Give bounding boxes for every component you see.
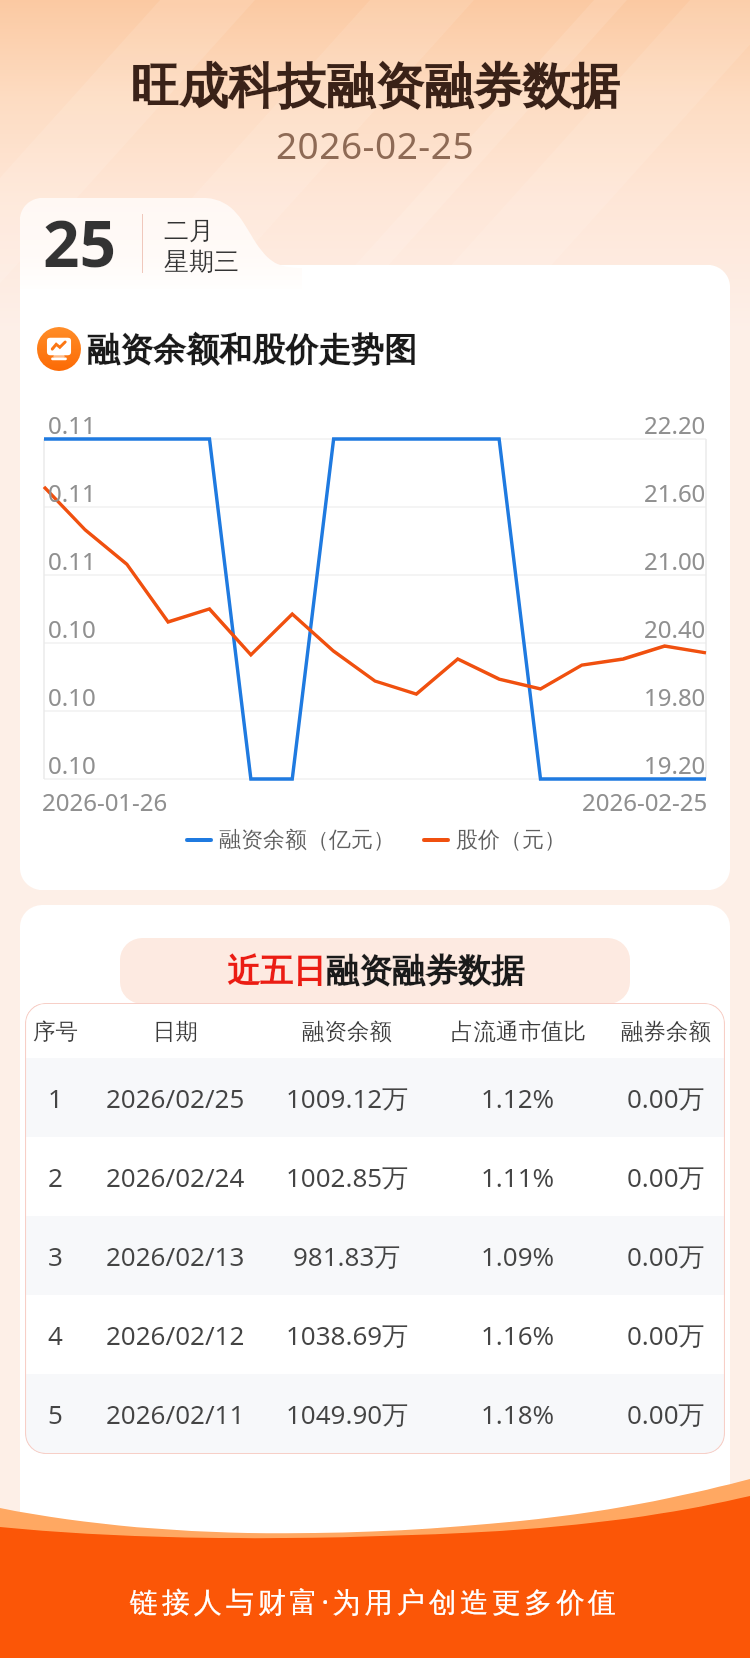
staticText: 融资余额 (302, 1017, 392, 1045)
staticText: 二月 (164, 215, 214, 246)
staticText: 旺成科技融资融券数据 (0, 56, 750, 118)
staticText: 1.18% (481, 1396, 555, 1431)
staticText: 0.10 (48, 612, 96, 645)
staticText: 2026-01-26 (42, 785, 168, 818)
button[interactable]: 序号 (25, 1003, 725, 1058)
staticText: 1038.69万 (286, 1317, 409, 1353)
staticText: 日期 (153, 1017, 198, 1045)
staticText: 19.20 (644, 748, 706, 781)
staticText: 3 (48, 1238, 63, 1273)
staticText: 0.00万 (627, 1317, 705, 1353)
staticText: 2026-02-25 (582, 785, 708, 818)
staticText: 0.11 (48, 544, 96, 577)
staticText: 1009.12万 (286, 1080, 409, 1116)
staticText: 星期三 (164, 246, 239, 277)
staticText: 融券余额 (621, 1017, 711, 1045)
staticText: 1.11% (481, 1159, 555, 1194)
staticText: 2 (48, 1159, 63, 1194)
staticText: 0.00万 (627, 1238, 705, 1274)
staticText: 融资融券数据 (326, 950, 524, 992)
staticText: 0.10 (48, 680, 96, 713)
staticText: 20.40 (644, 612, 706, 645)
button[interactable]: 4 (25, 1295, 725, 1374)
staticText: 21.60 (644, 476, 706, 509)
staticText: 链接人与财富·为用户创造更多价值 (0, 1582, 750, 1620)
button[interactable]: 2 (25, 1137, 725, 1216)
button[interactable]: 3 (25, 1216, 725, 1295)
staticText: 0.00万 (627, 1080, 705, 1116)
staticText: 2026/02/12 (106, 1317, 245, 1352)
staticText: 融资余额（亿元） (219, 826, 395, 854)
button[interactable]: 5 (25, 1374, 725, 1453)
staticText: 22.20 (644, 408, 706, 441)
staticText: 0.11 (48, 408, 96, 441)
staticText: 19.80 (644, 680, 706, 713)
staticText: 融资余额和股价走势图 (87, 329, 417, 371)
staticText: 2026-02-25 (0, 119, 750, 169)
staticText: 1.16% (481, 1317, 555, 1352)
staticText: 近五日 (227, 950, 326, 992)
staticText: 0.11 (48, 476, 96, 509)
staticText: 4 (48, 1317, 63, 1352)
staticText: 1049.90万 (286, 1396, 409, 1432)
staticText: 2026/02/13 (106, 1238, 245, 1273)
staticText: 2026/02/24 (106, 1159, 245, 1194)
staticText: 21.00 (644, 544, 706, 577)
button[interactable]: 1 (25, 1058, 725, 1137)
staticText: 1 (48, 1080, 63, 1115)
staticText: 1.12% (481, 1080, 555, 1115)
staticText: 0.10 (48, 748, 96, 781)
staticText: 0.00万 (627, 1159, 705, 1195)
staticText: 981.83万 (293, 1238, 401, 1274)
staticText: 1002.85万 (286, 1159, 409, 1195)
staticText: 2026/02/11 (106, 1396, 245, 1431)
staticText: 2026/02/25 (106, 1080, 245, 1115)
staticText: 0.00万 (627, 1396, 705, 1432)
button[interactable]: 走势图 (37, 327, 81, 371)
staticText: 25 (43, 199, 117, 286)
staticText: 占流通市值比 (451, 1017, 586, 1045)
staticText: 1.09% (481, 1238, 555, 1273)
staticText: 5 (48, 1396, 63, 1431)
staticText: 序号 (33, 1017, 78, 1045)
staticText: 股价（元） (456, 826, 566, 854)
